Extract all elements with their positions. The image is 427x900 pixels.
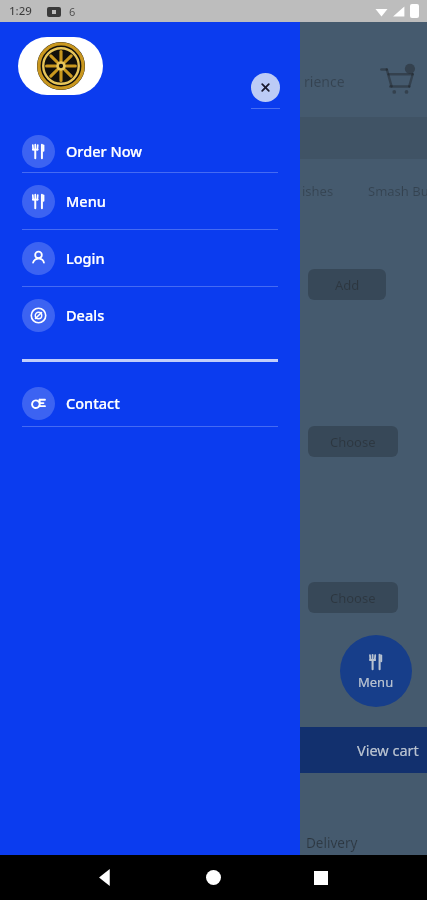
button[interactable]: Choose <box>308 582 398 613</box>
staticText: rience <box>304 72 345 91</box>
button[interactable]: Add <box>308 269 386 300</box>
button[interactable]: Home <box>159 855 267 900</box>
staticText: Deals <box>66 305 105 325</box>
button[interactable]: Recent apps <box>267 855 375 900</box>
staticText: Menu <box>358 673 394 691</box>
button[interactable]: Choose <box>308 426 398 457</box>
button[interactable]: Contact <box>0 380 300 426</box>
staticText: 1:29 <box>9 3 32 19</box>
button[interactable]: Order Now <box>0 130 300 172</box>
staticText: 6 <box>69 4 76 19</box>
button[interactable]: View cart <box>300 727 427 773</box>
staticText: Add <box>335 276 360 294</box>
staticText: View cart <box>357 740 419 760</box>
staticText: Smash Bu <box>368 182 427 200</box>
button[interactable]: Login <box>0 230 300 286</box>
staticText: Menu <box>66 191 106 211</box>
button[interactable]: Menu <box>0 173 300 229</box>
staticText: Choose <box>330 433 376 451</box>
button[interactable]: Deals <box>0 287 300 343</box>
staticText: Login <box>66 248 105 268</box>
staticText: Order Now <box>66 141 142 161</box>
staticText: Choose <box>330 589 376 607</box>
staticText: ishes <box>302 182 334 200</box>
staticText: Contact <box>66 393 120 413</box>
button[interactable]: Back <box>52 855 159 900</box>
staticText: Delivery <box>306 834 358 852</box>
button[interactable] <box>18 37 103 95</box>
button[interactable]: Menu <box>340 635 412 707</box>
button[interactable]: Close <box>251 73 280 102</box>
